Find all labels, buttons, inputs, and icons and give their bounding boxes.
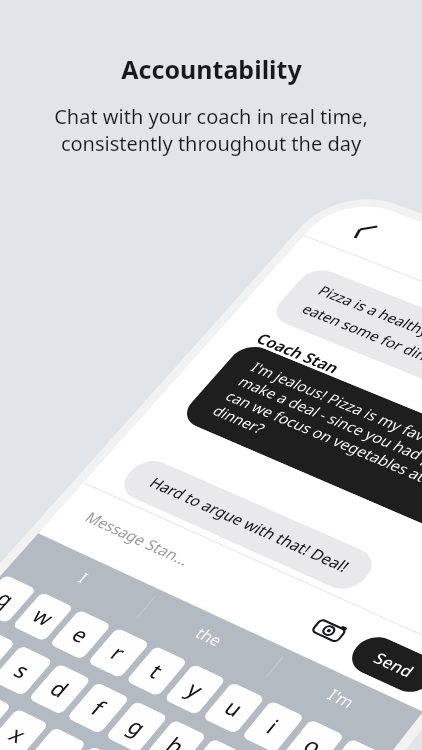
staticText: q: [0, 585, 22, 613]
button[interactable]: I'm: [261, 650, 422, 748]
staticText: e: [65, 621, 96, 649]
button[interactable]: Send: [343, 631, 422, 698]
staticText: Pizza is a healthy food, I've eaten some…: [298, 282, 422, 384]
button[interactable]: d: [28, 663, 91, 715]
button[interactable]: x: [0, 708, 49, 750]
staticText: d: [44, 674, 76, 704]
staticText: Accountability: [121, 52, 302, 86]
button[interactable]: u: [202, 682, 265, 734]
button[interactable]: Pizza is a healthy food, I've eaten some…: [298, 282, 422, 384]
button[interactable]: the: [132, 590, 288, 684]
button[interactable]: g: [105, 701, 168, 750]
button[interactable]: Hard to argue with that! Deal!: [145, 473, 354, 576]
button[interactable]: w: [12, 592, 74, 641]
staticText: r: [104, 639, 133, 666]
staticText: Message Stan...: [81, 507, 195, 569]
button[interactable]: y: [164, 664, 226, 715]
button[interactable]: j: [182, 738, 246, 750]
staticText: f: [85, 694, 111, 721]
button[interactable]: i: [241, 700, 305, 750]
button[interactable]: q: [0, 574, 37, 624]
staticText: y: [180, 675, 210, 704]
button[interactable]: e: [49, 610, 112, 660]
staticText: I'm jealous! Pizza is my favorite. Let's…: [208, 358, 422, 521]
button[interactable]: t: [126, 646, 188, 697]
staticText: t: [143, 657, 170, 684]
staticText: Send: [369, 648, 419, 682]
staticText: w: [26, 602, 60, 632]
staticText: Hard to argue with that! Deal!: [145, 473, 354, 576]
button[interactable]: Back: [343, 215, 388, 247]
staticText: o: [297, 731, 330, 750]
button[interactable]: c: [23, 727, 87, 750]
staticText: I: [74, 568, 94, 587]
button[interactable]: r: [87, 627, 150, 678]
button[interactable]: f: [66, 682, 130, 734]
staticText: u: [218, 693, 250, 723]
button[interactable]: s: [0, 645, 53, 696]
button[interactable]: Camera: [305, 611, 357, 652]
button[interactable]: I'm jealous! Pizza is my favorite. Let's…: [208, 358, 422, 521]
staticText: x: [2, 720, 33, 749]
staticText: Chat with your coach in real time, consi…: [0, 103, 422, 157]
button[interactable]: a: [0, 627, 16, 677]
button[interactable]: z: [0, 690, 12, 742]
staticText: c: [40, 739, 70, 750]
staticText: i: [260, 713, 286, 740]
staticText: h: [159, 731, 192, 750]
staticText: the: [191, 623, 228, 650]
staticText: I'm: [323, 684, 360, 713]
button[interactable]: I: [9, 533, 160, 623]
button[interactable]: v: [61, 746, 126, 750]
staticText: g: [121, 712, 153, 742]
button[interactable]: o: [281, 719, 345, 750]
staticText: s: [8, 657, 37, 684]
button[interactable]: h: [143, 719, 207, 750]
staticText: Coach Stan: [252, 329, 345, 378]
button[interactable]: p: [321, 738, 385, 750]
